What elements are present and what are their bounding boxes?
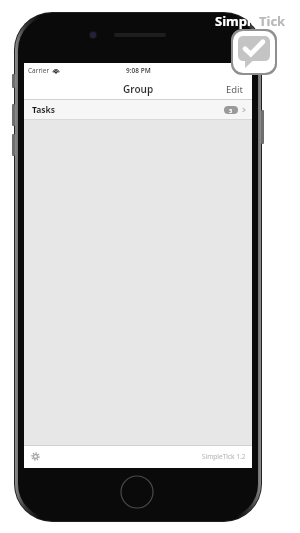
button[interactable]: Settings xyxy=(29,450,42,463)
staticText: Tasks xyxy=(32,104,56,116)
staticText: SimpleTick 1.2 xyxy=(202,452,246,461)
staticText: Simple xyxy=(215,12,259,30)
staticText: Edit xyxy=(226,83,244,96)
button[interactable]: Tasks xyxy=(24,100,252,119)
staticText: 9:08 PM xyxy=(126,66,151,75)
staticText: 3 xyxy=(229,107,233,114)
staticText: Group xyxy=(123,82,154,96)
button[interactable]: Edit xyxy=(218,80,252,99)
staticText: Tick xyxy=(259,12,286,30)
staticText: Carrier xyxy=(28,66,50,75)
